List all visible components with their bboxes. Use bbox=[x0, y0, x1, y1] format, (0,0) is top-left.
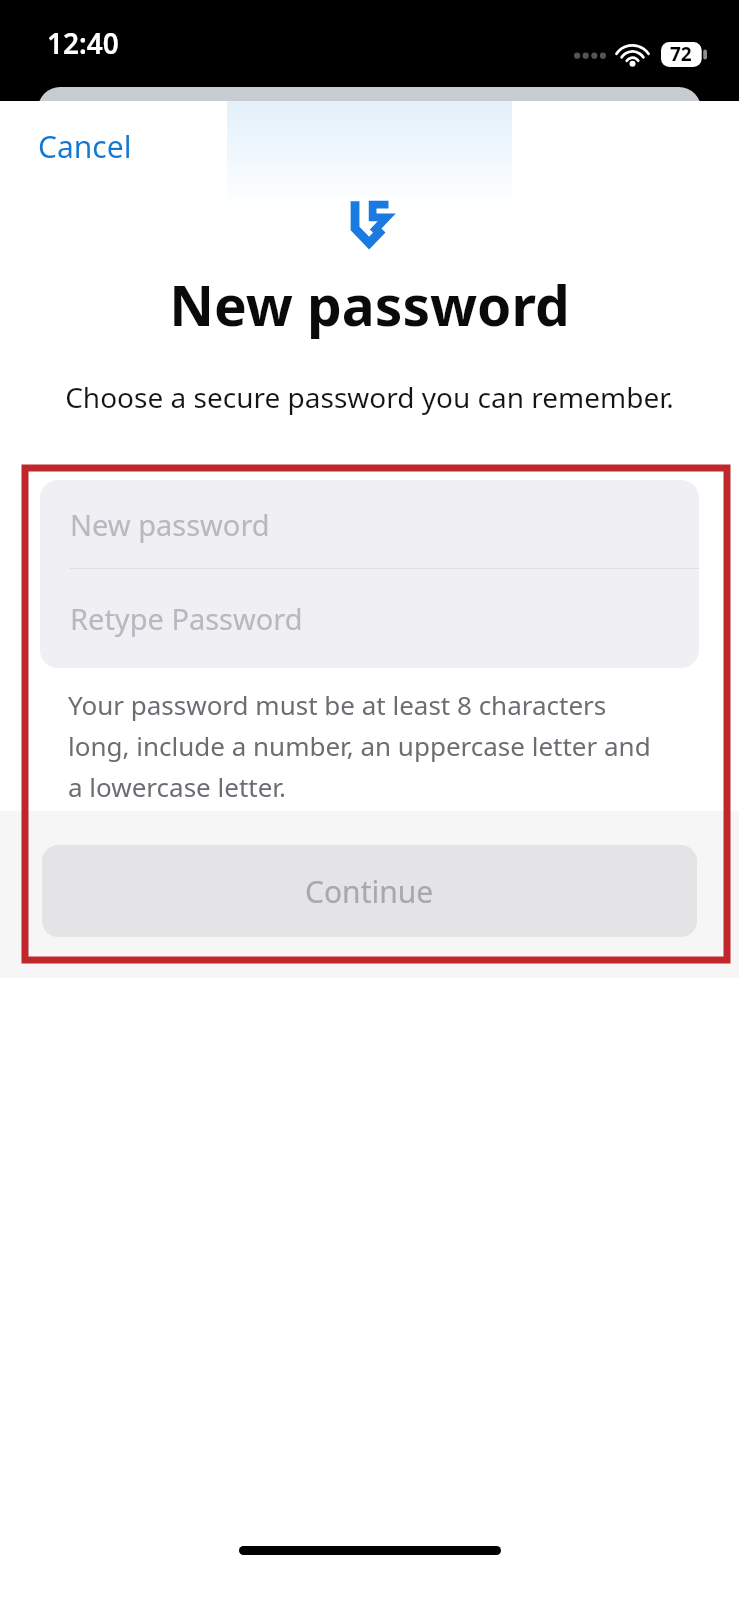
staticText: New password bbox=[70, 505, 270, 544]
button[interactable]: Cancel bbox=[24, 117, 146, 176]
staticText: Cancel bbox=[38, 126, 132, 167]
staticText: 12:40 bbox=[47, 24, 119, 62]
button[interactable]: Retype Password bbox=[40, 569, 699, 668]
staticText: Choose a secure password you can remembe… bbox=[65, 378, 674, 416]
staticText: Your password must be at least 8 charact… bbox=[68, 687, 658, 805]
button[interactable]: Continue bbox=[42, 845, 697, 937]
staticText: Continue bbox=[305, 871, 434, 912]
other: App logo bbox=[348, 199, 392, 245]
staticText: Retype Password bbox=[70, 599, 303, 638]
staticText: 72 bbox=[670, 41, 692, 67]
button[interactable]: New password bbox=[40, 480, 699, 568]
staticText: New password bbox=[169, 267, 570, 342]
